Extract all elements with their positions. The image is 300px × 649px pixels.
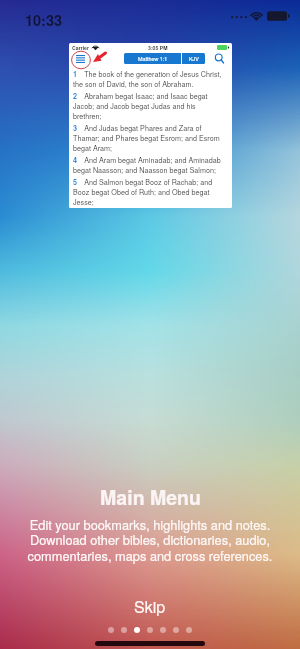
staticText: Matthew 1:1: [138, 55, 168, 63]
staticText: 10:33: [25, 10, 63, 31]
staticText: 4 And Aram begat Aminadab; and Aminadab …: [73, 155, 226, 175]
button[interactable]: Skip: [108, 592, 192, 621]
staticText: Carrier: [72, 44, 90, 51]
staticText: 2 Abraham begat Isaac; and Isaac begat J…: [73, 91, 226, 121]
button[interactable]: [173, 627, 179, 633]
staticText: Main Menu: [100, 483, 201, 511]
staticText: KJV: [189, 55, 199, 63]
button[interactable]: [108, 627, 114, 633]
button[interactable]: [186, 627, 192, 633]
staticText: 5 And Salmon begat Booz of Rachab; and B…: [73, 177, 226, 207]
button[interactable]: Main menu: [74, 52, 87, 65]
staticText: 1 The book of the generation of Jesus Ch…: [73, 69, 226, 89]
staticText: Skip: [134, 595, 166, 618]
button[interactable]: Search: [213, 52, 226, 65]
staticText: 3:05 PM: [148, 44, 168, 51]
button[interactable]: [134, 627, 140, 633]
button[interactable]: [147, 627, 153, 633]
staticText: 3 And Judas begat Phares and Zara of Tha…: [73, 123, 226, 153]
button[interactable]: [121, 627, 127, 633]
staticText: Edit your bookmarks, highlights and note…: [10, 515, 290, 565]
button[interactable]: [160, 627, 166, 633]
button[interactable]: Matthew 1:1: [124, 53, 205, 64]
